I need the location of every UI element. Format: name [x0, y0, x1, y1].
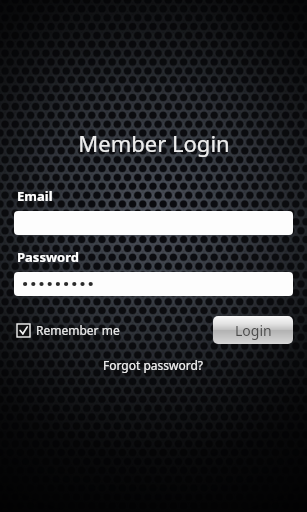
- button[interactable]: Forgot password?: [95, 354, 212, 376]
- staticText: Remember me: [36, 322, 120, 338]
- staticText: Member Login: [78, 128, 230, 158]
- button[interactable]: Email input: [14, 211, 293, 235]
- staticText: Login: [235, 321, 272, 340]
- button[interactable]: Password input: [14, 272, 293, 296]
- button[interactable]: Login: [213, 316, 293, 344]
- staticText: Password: [17, 248, 79, 266]
- staticText: Forgot password?: [103, 357, 204, 373]
- staticText: Email: [17, 187, 53, 205]
- button[interactable]: Remember me: [14, 318, 124, 342]
